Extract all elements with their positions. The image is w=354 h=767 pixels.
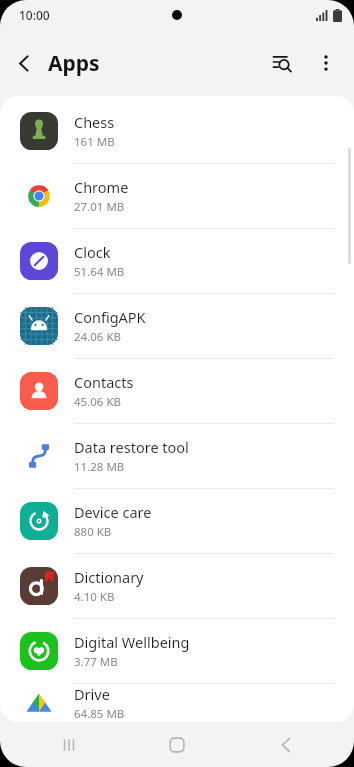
button[interactable]: More options bbox=[304, 41, 348, 85]
staticText: Drive bbox=[74, 684, 110, 704]
staticText: 3.77 MB bbox=[74, 654, 118, 670]
staticText: 64.85 MB bbox=[74, 706, 125, 722]
button[interactable]: Chrome bbox=[0, 164, 354, 228]
staticText: Digital Wellbeing bbox=[74, 632, 190, 652]
button[interactable]: Search bbox=[260, 41, 304, 85]
staticText: 51.64 MB bbox=[74, 264, 125, 280]
staticText: Device care bbox=[74, 502, 152, 522]
staticText: Dictionary bbox=[74, 567, 144, 587]
staticText: 11.28 MB bbox=[74, 459, 125, 475]
staticText: 4.10 KB bbox=[74, 589, 115, 605]
button[interactable]: Drive bbox=[0, 684, 354, 722]
staticText: 27.01 MB bbox=[74, 199, 125, 215]
staticText: 10:00 bbox=[19, 7, 50, 23]
staticText: Data restore tool bbox=[74, 437, 189, 457]
button[interactable]: Dictionary bbox=[0, 554, 354, 618]
staticText: Chrome bbox=[74, 177, 129, 197]
button[interactable]: Back bbox=[0, 39, 48, 87]
button[interactable]: Back bbox=[246, 722, 326, 767]
button[interactable]: Clock bbox=[0, 229, 354, 293]
staticText: 45.06 KB bbox=[74, 394, 121, 410]
staticText: Apps bbox=[48, 49, 100, 78]
button[interactable]: Digital Wellbeing bbox=[0, 619, 354, 683]
staticText: Clock bbox=[74, 242, 111, 262]
staticText: ConfigAPK bbox=[74, 307, 146, 327]
button[interactable]: Contacts bbox=[0, 359, 354, 423]
staticText: Contacts bbox=[74, 372, 134, 392]
button[interactable]: Device care bbox=[0, 489, 354, 553]
staticText: 24.06 KB bbox=[74, 329, 121, 345]
button[interactable]: Data restore tool bbox=[0, 424, 354, 488]
button[interactable]: ConfigAPK bbox=[0, 294, 354, 358]
staticText: Chess bbox=[74, 112, 115, 132]
staticText: 880 KB bbox=[74, 524, 112, 540]
button[interactable]: Chess bbox=[0, 99, 354, 163]
button[interactable]: Recents bbox=[29, 722, 109, 767]
button[interactable]: Home bbox=[137, 722, 217, 767]
staticText: 161 MB bbox=[74, 134, 115, 150]
